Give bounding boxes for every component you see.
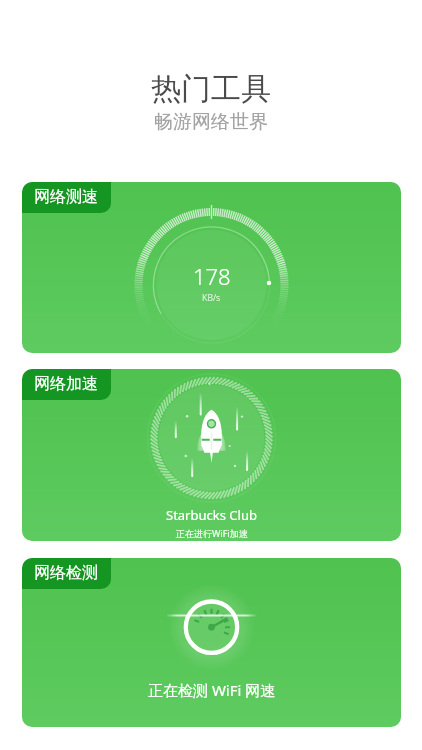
staticText: 正在检测 WiFi 网速 xyxy=(148,680,276,700)
staticText: 网络测速 xyxy=(34,187,98,207)
staticText: KB/s xyxy=(202,291,221,303)
staticText: 畅游网络世界 xyxy=(0,110,422,134)
staticText: Starbucks Club xyxy=(166,506,257,524)
staticText: 网络检测 xyxy=(34,563,98,583)
button[interactable]: 正在检测 WiFi 网速 xyxy=(22,558,401,727)
button[interactable]: 178 xyxy=(22,182,401,353)
button[interactable]: Starbucks Club xyxy=(22,369,401,541)
staticText: 178 xyxy=(193,261,231,291)
button[interactable]: 网络检测 xyxy=(22,558,111,589)
staticText: 网络加速 xyxy=(34,374,98,394)
button[interactable]: 网络加速 xyxy=(22,369,111,400)
button[interactable]: 网络测速 xyxy=(22,182,111,213)
staticText: 正在进行WiFi加速 xyxy=(176,527,248,539)
staticText: 热门工具 xyxy=(0,70,422,108)
